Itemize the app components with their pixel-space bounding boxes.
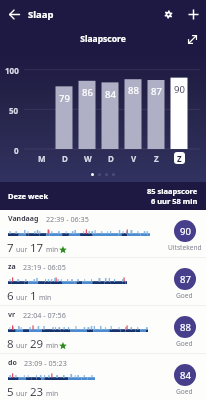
staticText: 1 xyxy=(30,288,37,304)
staticText: 22:04 - 07:56 xyxy=(23,310,66,320)
staticText: min xyxy=(39,293,52,302)
button[interactable]: Expand chart xyxy=(183,30,202,49)
staticText: 87 xyxy=(151,85,162,98)
staticText: 84 xyxy=(180,369,191,382)
button[interactable]: Add xyxy=(180,1,206,27)
staticText: 8 xyxy=(7,336,14,352)
button[interactable]: Back xyxy=(0,0,28,28)
staticText: D xyxy=(108,153,114,164)
staticText: 88 xyxy=(180,321,191,334)
staticText: 23:19 - 06:05 xyxy=(23,262,66,272)
staticText: V xyxy=(131,153,137,164)
staticText: 86 xyxy=(82,86,93,99)
staticText: 90 xyxy=(174,83,185,96)
staticText: min xyxy=(46,245,59,254)
staticText: 17 xyxy=(30,240,44,256)
staticText: Goed xyxy=(176,291,193,300)
staticText: Slaap xyxy=(28,8,54,21)
staticText: uur xyxy=(16,245,28,254)
staticText: M xyxy=(38,153,46,164)
staticText: 23 xyxy=(30,384,44,400)
staticText: Slaapscore xyxy=(0,33,206,45)
staticText: 6 xyxy=(7,288,14,304)
staticText: 50 xyxy=(9,105,19,116)
button[interactable]: za xyxy=(0,258,206,305)
staticText: min xyxy=(46,341,59,350)
staticText: Goed xyxy=(176,339,193,348)
staticText: 90 xyxy=(180,225,191,238)
button[interactable]: Vandaag xyxy=(0,210,206,257)
staticText: Goed xyxy=(176,387,193,396)
staticText: 6 uur 58 min xyxy=(151,196,198,206)
button[interactable]: vr xyxy=(0,306,206,353)
staticText: 88 xyxy=(128,84,139,97)
staticText: 29 xyxy=(30,336,44,352)
staticText: 5 xyxy=(7,384,14,400)
staticText: 100 xyxy=(5,65,19,76)
staticText: uur xyxy=(16,341,28,350)
staticText: Z xyxy=(154,153,159,164)
staticText: 0 xyxy=(14,145,19,156)
staticText: za xyxy=(8,262,16,272)
staticText: 85 slaapscore xyxy=(147,186,198,196)
staticText: uur xyxy=(16,293,28,302)
staticText: 84 xyxy=(105,88,116,101)
button[interactable]: do xyxy=(0,354,206,400)
staticText: 79 xyxy=(59,92,70,105)
staticText: D xyxy=(62,153,68,164)
staticText: W xyxy=(84,153,92,164)
staticText: 7 xyxy=(7,240,14,256)
staticText: uur xyxy=(16,389,28,398)
staticText: Deze week xyxy=(8,191,49,201)
staticText: min xyxy=(46,389,59,398)
staticText: Z xyxy=(177,153,182,164)
staticText: Vandaag xyxy=(8,214,39,224)
staticText: 87 xyxy=(180,273,191,286)
staticText: 23:09 - 05:23 xyxy=(24,358,67,368)
button[interactable]: Settings xyxy=(156,2,180,26)
staticText: Uitstekend xyxy=(168,243,202,252)
staticText: vr xyxy=(8,310,16,320)
staticText: do xyxy=(8,358,17,368)
staticText: 22:39 - 06:35 xyxy=(46,214,89,224)
